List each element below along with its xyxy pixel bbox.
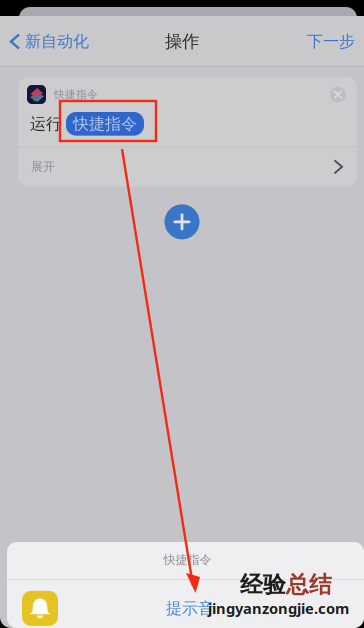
button[interactable]: 下一步 xyxy=(307,23,364,60)
staticText: 快捷指令 xyxy=(54,88,98,101)
staticText: 新自动化 xyxy=(25,32,89,51)
staticText: 操作 xyxy=(165,31,199,52)
button[interactable]: 提示音 xyxy=(166,592,214,624)
staticText: 快捷指令 xyxy=(163,552,211,567)
button[interactable]: 展开 xyxy=(18,147,357,186)
staticText: 运行 xyxy=(30,114,62,134)
staticText: 经验 xyxy=(240,571,286,598)
staticText: 展开 xyxy=(31,159,55,174)
staticText: 提示音 xyxy=(166,598,214,618)
button[interactable]: 新自动化 xyxy=(0,23,89,60)
staticText: 下一步 xyxy=(307,32,355,51)
button[interactable]: Add action xyxy=(164,204,199,239)
button[interactable]: 快捷指令 xyxy=(66,112,144,136)
staticText: 快捷指令 xyxy=(73,114,137,134)
staticText: jingyanzongjie.com xyxy=(208,598,349,618)
staticText: 总结 xyxy=(286,571,332,598)
button[interactable]: Remove action xyxy=(330,86,346,102)
